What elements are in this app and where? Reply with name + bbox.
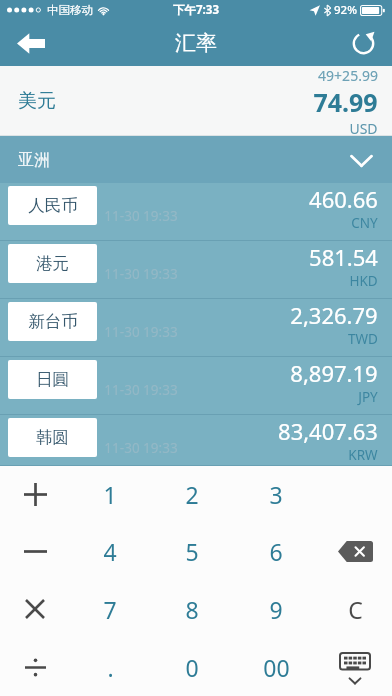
staticText: 11-30 19:33 bbox=[104, 439, 178, 457]
staticText: 92% bbox=[334, 2, 357, 18]
button[interactable]: 韩圆 bbox=[0, 415, 392, 466]
button[interactable]: 6 bbox=[234, 523, 318, 580]
staticText: 人民币 bbox=[28, 195, 78, 216]
staticText: HKD bbox=[349, 272, 378, 290]
staticText: C bbox=[348, 594, 363, 625]
button[interactable]: 人民币 bbox=[0, 183, 392, 241]
button[interactable]: 5 bbox=[150, 523, 234, 580]
staticText: 00 bbox=[263, 652, 290, 683]
staticText: KRW bbox=[348, 446, 378, 464]
staticText: 2 bbox=[185, 479, 199, 510]
staticText: 2,326.79 bbox=[290, 300, 378, 330]
button[interactable]: 美元 bbox=[0, 66, 392, 136]
button[interactable]: C bbox=[318, 580, 392, 638]
button[interactable]: 3 bbox=[234, 466, 318, 523]
button[interactable]: Divide bbox=[0, 638, 70, 696]
button[interactable]: . bbox=[70, 638, 150, 696]
button[interactable]: 9 bbox=[234, 580, 318, 638]
staticText: 亚洲 bbox=[18, 150, 50, 170]
button[interactable]: Refresh bbox=[334, 20, 392, 66]
staticText: 韩圆 bbox=[36, 427, 69, 448]
staticText: 3 bbox=[269, 479, 283, 510]
staticText: 下午7:33 bbox=[173, 2, 219, 18]
staticText: USD bbox=[349, 119, 378, 136]
staticText: 83,407.63 bbox=[278, 416, 378, 446]
staticText: 8,897.19 bbox=[290, 358, 378, 388]
button[interactable]: Plus bbox=[0, 466, 70, 523]
staticText: 11-30 19:33 bbox=[104, 207, 178, 225]
staticText: 11-30 19:33 bbox=[104, 323, 178, 341]
staticText: 9 bbox=[269, 594, 283, 625]
staticText: 460.66 bbox=[309, 184, 378, 214]
staticText: 日圓 bbox=[36, 369, 69, 390]
button[interactable]: Backspace bbox=[318, 523, 392, 580]
staticText: 汇率 bbox=[175, 30, 217, 56]
staticText: 49+25.99 bbox=[318, 66, 378, 85]
button[interactable]: 亚洲 bbox=[0, 136, 392, 183]
staticText: 6 bbox=[269, 536, 283, 567]
staticText: 7 bbox=[103, 594, 117, 625]
staticText: 1 bbox=[103, 479, 117, 510]
button[interactable]: 日圓 bbox=[0, 357, 392, 415]
staticText: 港元 bbox=[36, 253, 69, 274]
staticText: 中国移动 bbox=[47, 3, 93, 17]
staticText: 4 bbox=[103, 536, 117, 567]
button[interactable]: 新台币 bbox=[0, 299, 392, 357]
staticText: 11-30 19:33 bbox=[104, 381, 178, 399]
staticText: TWD bbox=[348, 330, 378, 348]
staticText: 新台币 bbox=[28, 311, 78, 332]
staticText: 11-30 19:33 bbox=[104, 265, 178, 283]
button[interactable]: 00 bbox=[234, 638, 318, 696]
button[interactable]: 7 bbox=[70, 580, 150, 638]
button[interactable]: 0 bbox=[150, 638, 234, 696]
button[interactable]: 1 bbox=[70, 466, 150, 523]
button[interactable]: Minus bbox=[0, 523, 70, 580]
button[interactable]: 2 bbox=[150, 466, 234, 523]
button[interactable]: Back bbox=[0, 20, 62, 66]
button[interactable]: 4 bbox=[70, 523, 150, 580]
staticText: 581.54 bbox=[309, 242, 378, 272]
staticText: 8 bbox=[185, 594, 199, 625]
staticText: CNY bbox=[351, 214, 378, 232]
staticText: . bbox=[107, 652, 114, 683]
button[interactable]: 港元 bbox=[0, 241, 392, 299]
staticText: 美元 bbox=[18, 89, 56, 113]
button[interactable]: Multiply bbox=[0, 580, 70, 638]
button[interactable]: 8 bbox=[150, 580, 234, 638]
staticText: 5 bbox=[185, 536, 199, 567]
staticText: 0 bbox=[185, 652, 199, 683]
staticText: 74.99 bbox=[313, 85, 378, 119]
staticText: JPY bbox=[358, 388, 378, 406]
button[interactable]: Hide keyboard bbox=[318, 638, 392, 696]
